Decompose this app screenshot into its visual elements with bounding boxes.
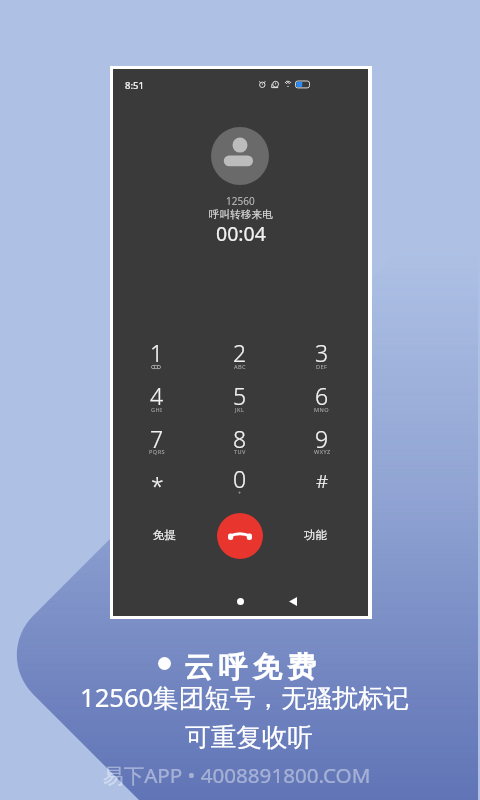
staticText: 12560 (226, 194, 255, 208)
staticText: GHI (151, 406, 163, 414)
staticText: 00:04 (216, 220, 266, 247)
button[interactable]: 免提 (134, 524, 194, 546)
button[interactable] (212, 420, 268, 460)
staticText: 8:51 (125, 79, 144, 92)
button[interactable] (129, 335, 185, 375)
staticText: 4 (150, 380, 164, 406)
staticText: * (151, 470, 164, 496)
button[interactable]: 云呼免费 (152, 640, 324, 686)
staticText: WXYZ (314, 448, 331, 456)
staticText: + (238, 489, 242, 497)
button[interactable] (212, 335, 268, 375)
staticText: 易下APP • 4008891800.COM (103, 761, 371, 789)
staticText: # (316, 468, 329, 494)
staticText: 功能 (304, 528, 327, 542)
staticText: JKL (235, 406, 245, 414)
staticText: 7 (150, 423, 164, 449)
staticText: MNO (314, 406, 330, 414)
button[interactable] (212, 378, 268, 418)
staticText: 可重复收听 (185, 721, 313, 753)
staticText: 8 (233, 423, 247, 449)
staticText: 3 (315, 337, 329, 363)
button[interactable]: Home (225, 586, 255, 616)
button[interactable]: End call (217, 513, 263, 559)
button[interactable] (294, 420, 350, 460)
button[interactable] (129, 378, 185, 418)
button[interactable]: 功能 (285, 524, 345, 546)
staticText: 2 (233, 337, 247, 363)
staticText: 1 (150, 337, 164, 363)
button[interactable] (294, 461, 350, 501)
staticText: 云呼免费 (184, 649, 322, 686)
staticText: 免提 (153, 528, 176, 542)
button[interactable] (294, 335, 350, 375)
staticText: 0 (233, 463, 247, 489)
staticText: 9 (315, 423, 329, 449)
staticText: 5 (233, 380, 247, 406)
button[interactable] (294, 378, 350, 418)
button[interactable]: 易下APP • 4008891800.COM (103, 761, 371, 789)
staticText: DEF (316, 363, 328, 371)
staticText: 呼叫转移来电 (209, 208, 273, 221)
staticText: 6 (315, 380, 329, 406)
staticText: PQRS (149, 448, 166, 456)
staticText: ABC (234, 363, 247, 371)
button[interactable] (129, 420, 185, 460)
staticText: 12560集团短号，无骚扰标记 (80, 680, 410, 715)
button[interactable] (129, 461, 185, 501)
staticText: TUV (234, 448, 246, 456)
button[interactable] (212, 461, 268, 501)
button[interactable]: Back (278, 586, 308, 616)
